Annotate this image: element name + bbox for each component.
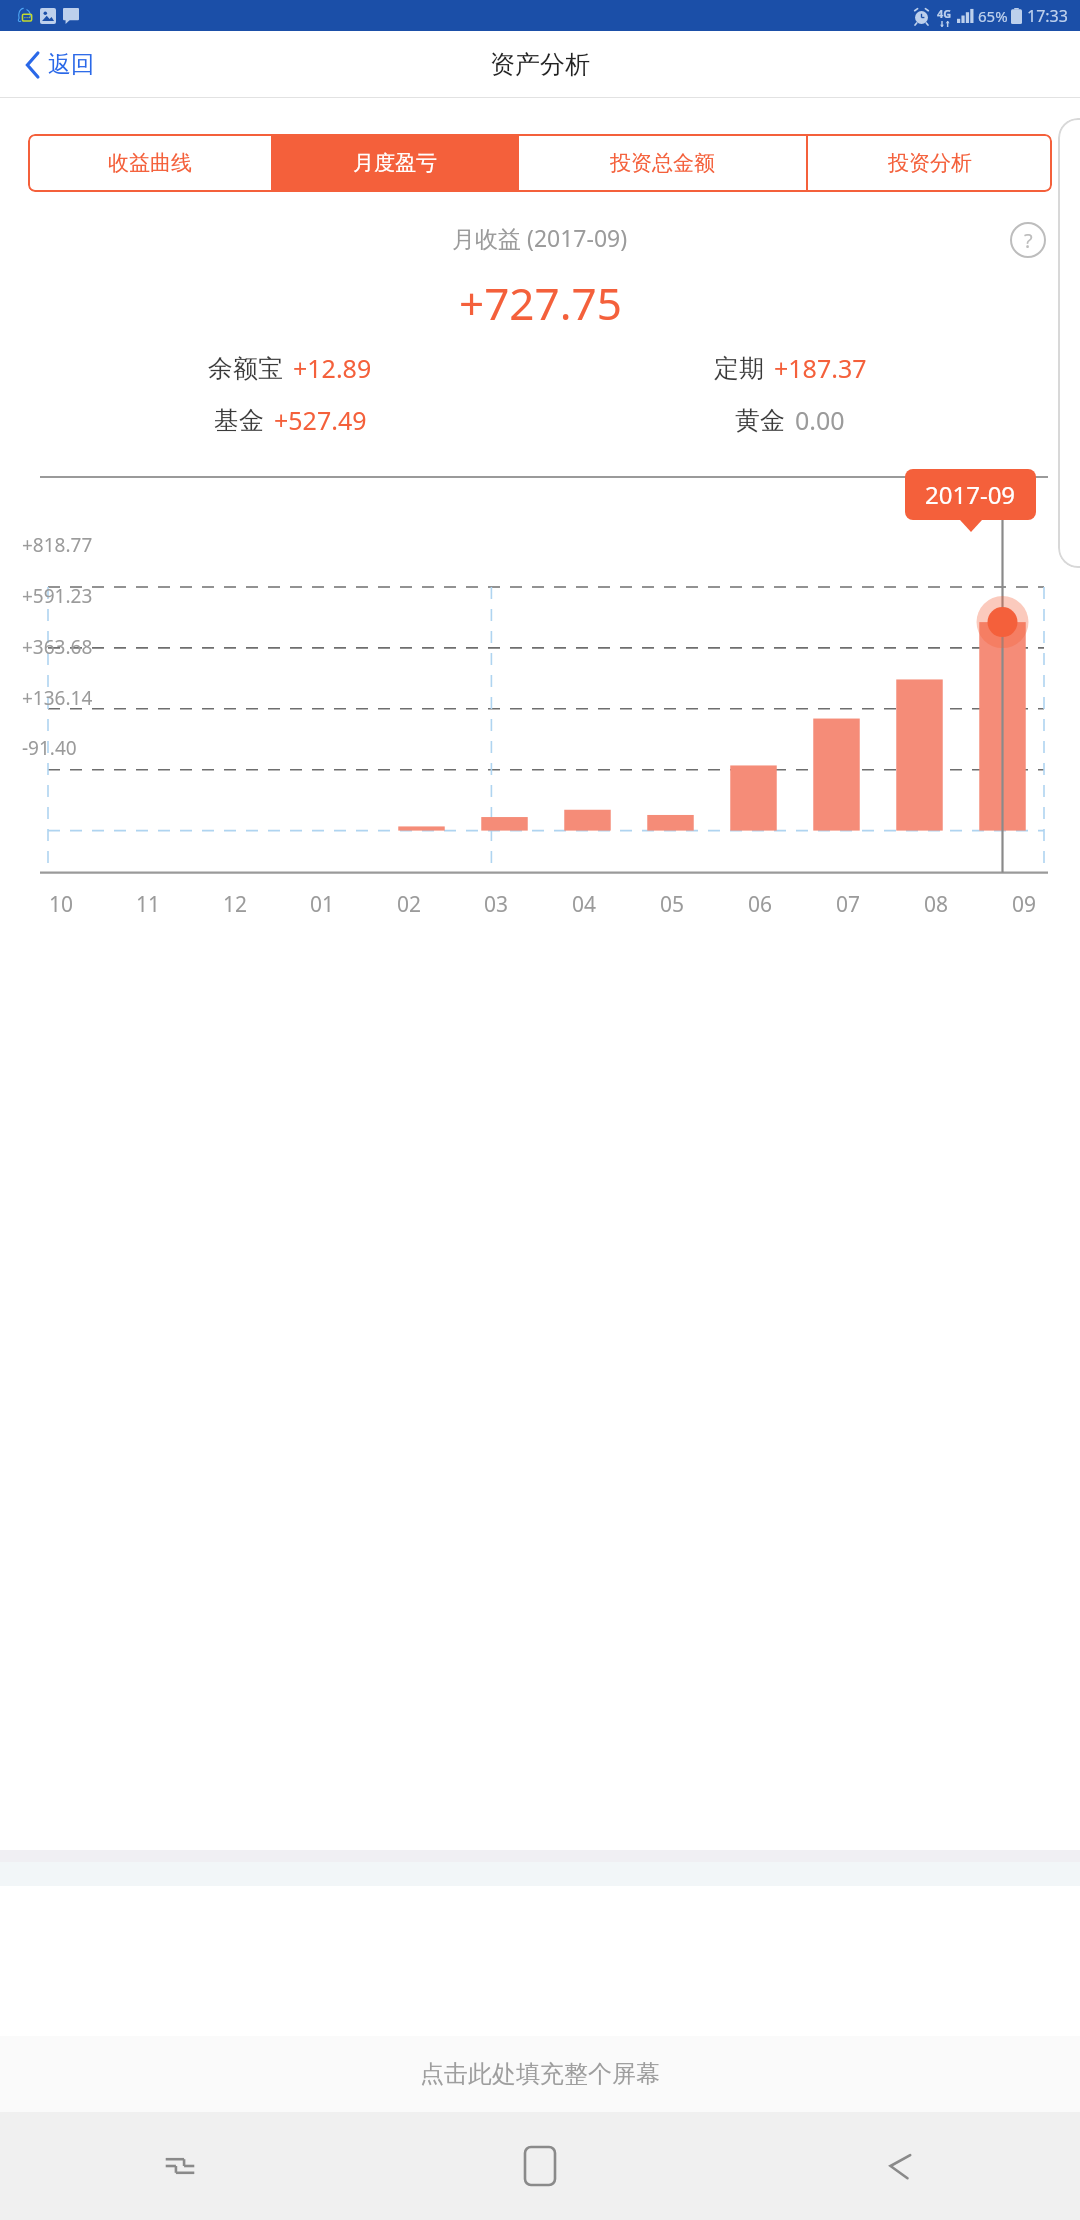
staticText: +527.49: [274, 403, 367, 437]
staticText: 12: [223, 890, 248, 919]
button[interactable]: 主屏幕: [360, 2112, 720, 2220]
button[interactable]: 点击此处填充整个屏幕: [0, 2036, 1080, 2112]
button[interactable]: 投资总金额: [519, 134, 806, 192]
staticText: 10: [49, 890, 74, 919]
staticText: +591.23: [22, 583, 93, 609]
staticText: 投资总金额: [610, 150, 715, 176]
staticText: 投资分析: [888, 150, 972, 176]
staticText: +12.89: [293, 351, 372, 385]
staticText: 08: [924, 890, 949, 919]
staticText: 月度盈亏: [353, 150, 437, 176]
staticText: 0.00: [795, 403, 845, 437]
staticText: 06: [748, 890, 773, 919]
button[interactable]: 返回: [720, 2112, 1080, 2220]
staticText: 余额宝: [208, 353, 283, 384]
button[interactable]: 返回: [0, 40, 114, 89]
staticText: +136.14: [22, 685, 93, 711]
button[interactable]: 收益曲线: [28, 134, 271, 192]
staticText: 05: [660, 890, 685, 919]
staticText: +818.77: [22, 532, 93, 558]
staticText: 04: [572, 890, 597, 919]
staticText: 点击此处填充整个屏幕: [420, 2059, 660, 2089]
staticText: +727.75: [459, 273, 622, 333]
staticText: 返回: [48, 50, 94, 79]
button[interactable]: 2017-09: [925, 478, 1016, 511]
staticText: 03: [484, 890, 509, 919]
staticText: 资产分析: [490, 49, 590, 80]
button[interactable]: 侧边栏: [1058, 118, 1080, 568]
staticText: 11: [136, 890, 161, 919]
staticText: 基金: [214, 405, 264, 436]
staticText: 月收益 (2017-09): [452, 222, 628, 253]
staticText: 65%: [978, 6, 1008, 26]
staticText: 4G: [937, 6, 952, 21]
staticText: ?: [1024, 227, 1033, 254]
staticText: 黄金: [735, 405, 785, 436]
button[interactable]: 最近任务: [0, 2112, 360, 2220]
button[interactable]: 投资分析: [808, 134, 1052, 192]
staticText: 09: [1012, 890, 1037, 919]
staticText: 17:33: [1027, 5, 1068, 27]
staticText: 07: [836, 890, 861, 919]
staticText: 收益曲线: [108, 150, 192, 176]
staticText: +187.37: [774, 351, 867, 385]
button[interactable]: 帮助: [1010, 222, 1046, 258]
staticText: +363.68: [22, 634, 93, 660]
staticText: 02: [397, 890, 422, 919]
staticText: 01: [310, 890, 335, 919]
staticText: 2017-09: [925, 478, 1016, 511]
button[interactable]: 月度盈亏: [273, 134, 517, 192]
staticText: -91.40: [22, 735, 77, 761]
staticText: 定期: [714, 353, 764, 384]
